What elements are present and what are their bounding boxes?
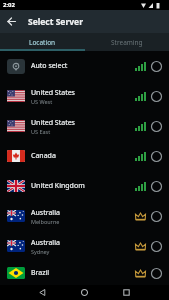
button[interactable]: Canada bbox=[0, 141, 169, 171]
button[interactable]: Auto select bbox=[0, 51, 169, 81]
staticText: Canada bbox=[31, 151, 56, 161]
button[interactable]: Brazil bbox=[0, 261, 169, 285]
button[interactable]: Australia bbox=[0, 231, 169, 261]
button[interactable]: Australia bbox=[0, 201, 169, 231]
staticText: Select Server bbox=[28, 16, 83, 28]
staticText: 2:02 bbox=[3, 1, 15, 9]
button[interactable]: United Kingdom bbox=[0, 171, 169, 201]
staticText: Australia bbox=[31, 208, 60, 218]
button[interactable]: United States bbox=[0, 81, 169, 111]
button[interactable]: Streaming bbox=[84, 33, 169, 51]
button[interactable] bbox=[119, 285, 134, 300]
staticText: Australia bbox=[31, 238, 60, 248]
button[interactable]: United States bbox=[0, 111, 169, 141]
staticText: Auto select bbox=[31, 61, 68, 71]
staticText: United States bbox=[31, 118, 75, 128]
staticText: US East bbox=[31, 128, 51, 135]
staticText: United States bbox=[31, 88, 75, 98]
button[interactable] bbox=[35, 285, 50, 300]
staticText: Brazil bbox=[31, 268, 50, 278]
button[interactable]: Location bbox=[0, 33, 84, 51]
staticText: Location bbox=[29, 38, 56, 47]
button[interactable] bbox=[0, 10, 23, 33]
staticText: Melbourne bbox=[31, 218, 60, 225]
button[interactable] bbox=[77, 285, 92, 300]
staticText: Streaming bbox=[111, 38, 143, 47]
staticText: Sydney bbox=[31, 248, 50, 255]
staticText: US West bbox=[31, 98, 53, 105]
staticText: United Kingdom bbox=[31, 181, 85, 191]
